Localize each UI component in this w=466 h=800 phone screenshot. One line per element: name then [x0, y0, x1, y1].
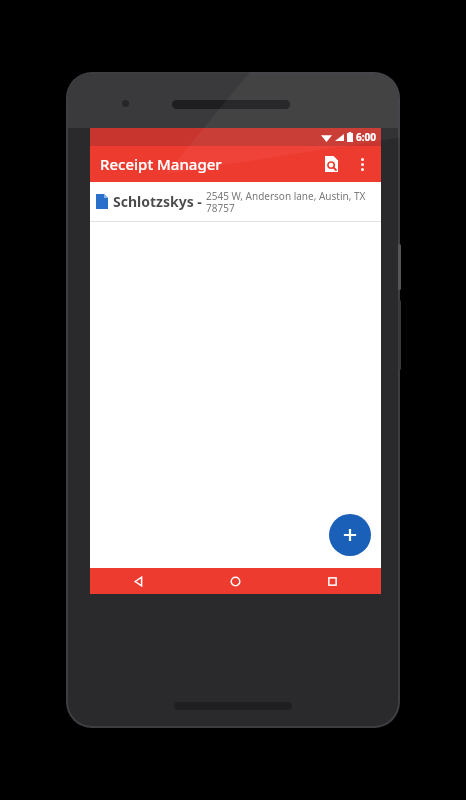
staticText: Receipt Manager: [100, 154, 222, 174]
staticText: Schlotzskys -: [113, 192, 202, 211]
button[interactable]: Back: [90, 568, 187, 594]
button[interactable]: Add receipt: [329, 514, 371, 556]
button[interactable]: Search receipts: [315, 148, 347, 180]
button[interactable]: Recents: [284, 568, 381, 594]
button[interactable]: Home: [187, 568, 284, 594]
staticText: 6:00: [356, 130, 376, 144]
button[interactable]: Schlotzskys -: [90, 182, 381, 221]
button[interactable]: More options: [347, 149, 377, 179]
staticText: 2545 W, Anderson lane, Austin, TX 78757: [206, 189, 375, 215]
